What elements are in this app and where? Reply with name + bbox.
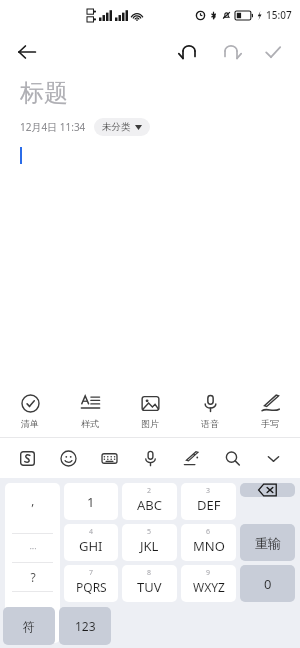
staticText: 标题 [20, 78, 68, 108]
button[interactable]: 6 [181, 524, 236, 561]
button[interactable]: 4 [64, 524, 118, 561]
button[interactable]: 重输 [240, 524, 295, 561]
staticText: 7 [89, 568, 94, 578]
staticText: ABC [137, 496, 162, 514]
staticText: 重输 [255, 535, 281, 551]
button[interactable]: 清单 [0, 394, 60, 429]
staticText: 5 [147, 527, 152, 537]
staticText: PQRS [76, 579, 107, 595]
button[interactable]: Handwriting [177, 444, 205, 472]
button[interactable]: 9 [181, 565, 236, 602]
staticText: ? [30, 569, 36, 585]
button[interactable]: 3 [181, 483, 236, 520]
staticText: 清单 [21, 418, 39, 429]
button[interactable]: 2 [122, 483, 177, 520]
button[interactable]: Sogou [13, 444, 41, 472]
button[interactable]: 0 [240, 565, 295, 602]
button[interactable]: 7 [64, 565, 118, 602]
button[interactable]: 语音 [180, 394, 240, 429]
button[interactable]: 8 [122, 565, 177, 602]
staticText: 15:07 [266, 8, 292, 22]
button[interactable]: 1 [64, 483, 118, 520]
staticText: WXYZ [193, 579, 225, 595]
staticText: 0 [264, 575, 272, 593]
button[interactable]: Search [218, 444, 246, 472]
button[interactable]: ? [5, 563, 60, 591]
button[interactable]: ! [5, 592, 60, 643]
button[interactable]: 手写 [240, 394, 300, 429]
staticText: 1 [87, 493, 95, 511]
staticText: 3 [206, 486, 211, 496]
button[interactable]: 123 [59, 607, 111, 645]
staticText: 6 [206, 527, 211, 537]
button[interactable]: 符 [3, 607, 55, 645]
staticText: MNO [193, 537, 225, 555]
staticText: 样式 [81, 418, 99, 429]
staticText: 8 [147, 568, 152, 578]
staticText: 123 [75, 618, 96, 634]
staticText: 符 [23, 619, 35, 634]
button[interactable]: 图片 [120, 394, 180, 429]
button[interactable]: Keyboard [95, 444, 123, 472]
button[interactable]: Back [10, 35, 44, 69]
button[interactable]: ··· [5, 534, 60, 562]
staticText: 4 [89, 527, 94, 537]
button[interactable]: Backspace [240, 483, 295, 497]
button[interactable]: Undo [174, 37, 204, 67]
staticText: DEF [197, 496, 221, 514]
staticText: ! [31, 610, 35, 626]
button[interactable]: Voice input [136, 444, 164, 472]
staticText: 2 [147, 486, 152, 496]
button[interactable]: Redo [216, 37, 246, 67]
staticText: 语音 [201, 418, 219, 429]
staticText: JKL [140, 537, 159, 555]
staticText: ··· [29, 542, 37, 554]
staticText: TUV [137, 578, 162, 596]
button[interactable]: Done [258, 37, 288, 67]
staticText: GHI [79, 537, 103, 555]
button[interactable]: 未分类 [94, 118, 150, 136]
button[interactable]: ’ [5, 483, 60, 533]
staticText: 未分类 [102, 121, 131, 133]
button[interactable]: 5 [122, 524, 177, 561]
staticText: 图片 [141, 418, 159, 429]
button[interactable]: Emoji [54, 444, 82, 472]
button[interactable]: Hide keyboard [259, 444, 287, 472]
button[interactable]: 样式 [60, 394, 120, 429]
staticText: 12月4日 11:34 [20, 120, 86, 134]
staticText: 9 [206, 568, 211, 578]
staticText: ’ [31, 500, 34, 516]
staticText: 手写 [261, 418, 279, 429]
